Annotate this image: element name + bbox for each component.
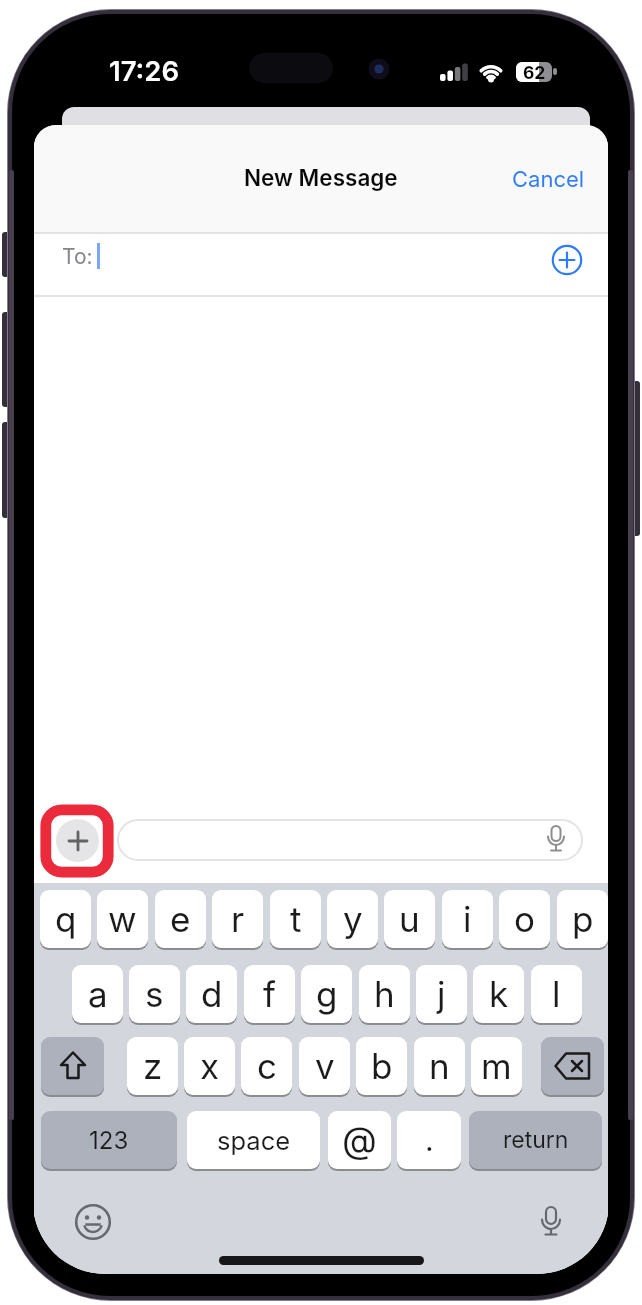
button[interactable]: k [473, 965, 524, 1023]
button[interactable]: return [469, 1111, 602, 1169]
button[interactable]: s [129, 965, 180, 1023]
button[interactable]: t [270, 890, 321, 948]
button[interactable] [541, 1037, 604, 1095]
staticText: r [231, 898, 245, 940]
staticText: l [552, 973, 561, 1015]
button[interactable] [117, 819, 583, 861]
staticText: z [143, 1045, 163, 1087]
staticText: To: [62, 244, 99, 269]
staticText: @ [342, 1118, 377, 1162]
staticText: w [108, 898, 137, 940]
staticText: d [201, 973, 223, 1015]
staticText: c [257, 1045, 277, 1087]
button[interactable]: x [184, 1037, 235, 1095]
button[interactable]: r [212, 890, 263, 948]
button[interactable]: space [187, 1111, 320, 1169]
staticText: o [514, 898, 535, 940]
staticText: a [88, 973, 108, 1015]
staticText: g [316, 973, 338, 1015]
staticText: x [200, 1045, 220, 1087]
button[interactable]: y [327, 890, 378, 948]
button[interactable]: e [155, 890, 206, 948]
button[interactable]: f [244, 965, 295, 1023]
staticText: u [399, 898, 420, 940]
staticText: . [425, 1122, 434, 1158]
staticText: y [343, 898, 363, 940]
button[interactable]: 123 [41, 1111, 177, 1169]
button[interactable] [56, 819, 99, 862]
button[interactable]: j [416, 965, 467, 1023]
button[interactable] [532, 1203, 570, 1241]
button[interactable]: z [127, 1037, 178, 1095]
staticText: q [55, 898, 77, 940]
staticText: p [572, 898, 594, 940]
button[interactable]: i [442, 890, 493, 948]
staticText: return [503, 1126, 569, 1154]
staticText: e [170, 898, 191, 940]
button[interactable]: n [414, 1037, 465, 1095]
staticText: m [481, 1045, 512, 1087]
button[interactable]: a [72, 965, 123, 1023]
staticText: 17:26 [109, 54, 180, 87]
button[interactable] [552, 245, 584, 277]
button[interactable]: . [397, 1111, 461, 1169]
button[interactable]: p [557, 890, 608, 948]
staticText: New Message [244, 164, 398, 191]
button[interactable]: @ [328, 1111, 391, 1169]
button[interactable] [41, 1037, 104, 1095]
button[interactable] [74, 1203, 112, 1241]
button[interactable]: h [359, 965, 410, 1023]
button[interactable]: g [301, 965, 352, 1023]
staticText: n [429, 1045, 450, 1087]
button[interactable]: o [499, 890, 550, 948]
button[interactable]: m [471, 1037, 522, 1095]
staticText: h [374, 973, 395, 1015]
staticText: 62 [523, 62, 546, 82]
staticText: f [263, 973, 276, 1015]
staticText: t [290, 898, 302, 940]
button[interactable]: b [356, 1037, 407, 1095]
button[interactable]: u [384, 890, 435, 948]
button[interactable]: c [241, 1037, 292, 1095]
button[interactable]: d [186, 965, 237, 1023]
staticText: i [463, 898, 472, 940]
staticText: k [489, 973, 509, 1015]
button[interactable]: w [97, 890, 148, 948]
staticText: v [315, 1045, 335, 1087]
button[interactable]: v [299, 1037, 350, 1095]
staticText: j [437, 973, 446, 1015]
staticText: b [371, 1045, 393, 1087]
button[interactable]: q [40, 890, 91, 948]
staticText: space [217, 1125, 291, 1156]
staticText: s [145, 973, 164, 1015]
button[interactable]: Cancel [434, 153, 585, 205]
staticText: 123 [89, 1126, 129, 1155]
staticText: Cancel [512, 166, 585, 193]
button[interactable]: l [531, 965, 582, 1023]
